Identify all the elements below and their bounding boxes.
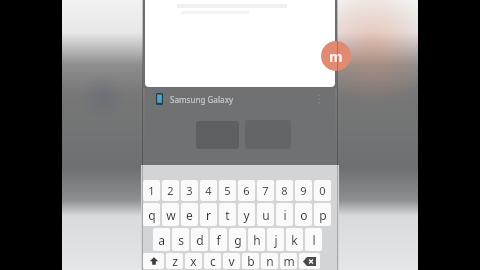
button[interactable]: Badge [321, 41, 351, 71]
staticText: 2 [167, 183, 174, 198]
button[interactable]: 5 [219, 180, 236, 201]
staticText: u [262, 207, 270, 223]
staticText: j [274, 232, 278, 248]
staticText: 6 [243, 183, 250, 198]
button[interactable]: s [172, 228, 189, 251]
staticText: z [172, 253, 178, 269]
button[interactable]: e [181, 203, 198, 226]
staticText: 5 [224, 183, 231, 198]
staticText: 0 [319, 183, 326, 198]
staticText: h [253, 232, 261, 248]
staticText: f [216, 232, 221, 248]
button[interactable]: h [248, 228, 265, 251]
button[interactable]: x [185, 253, 202, 269]
button[interactable]: 4 [200, 180, 217, 201]
staticText: c [210, 253, 216, 269]
button[interactable]: f [210, 228, 227, 251]
staticText: g [234, 232, 242, 248]
staticText: 3 [186, 183, 193, 198]
staticText: l [312, 232, 316, 248]
button[interactable]: v [223, 253, 240, 269]
button[interactable]: 1 [143, 180, 160, 201]
button[interactable]: j [267, 228, 284, 251]
button[interactable]: y [238, 203, 255, 226]
button[interactable]: c [204, 253, 221, 269]
button[interactable]: 0 [314, 180, 331, 201]
staticText: x [190, 253, 197, 269]
staticText: m [329, 47, 343, 66]
button[interactable]: t [219, 203, 236, 226]
staticText: i [283, 207, 287, 223]
staticText: b [247, 253, 255, 269]
staticText: 9 [300, 183, 307, 198]
button[interactable]: l [305, 228, 322, 251]
button[interactable]: 6 [238, 180, 255, 201]
staticText: y [243, 207, 250, 223]
staticText: 7 [262, 183, 269, 198]
staticText: d [196, 232, 204, 248]
staticText: m [283, 253, 295, 269]
staticText: o [300, 207, 308, 223]
button[interactable]: g [229, 228, 246, 251]
staticText: 8 [281, 183, 288, 198]
button[interactable]: 7 [257, 180, 274, 201]
button[interactable]: 3 [181, 180, 198, 201]
staticText: s [178, 232, 184, 248]
staticText: e [186, 207, 193, 223]
button[interactable]: u [257, 203, 274, 226]
button[interactable]: b [242, 253, 259, 269]
staticText: v [228, 253, 235, 269]
button[interactable]: p [314, 203, 331, 226]
button[interactable]: q [143, 203, 160, 226]
button[interactable]: a [153, 228, 170, 251]
staticText: q [148, 207, 156, 223]
button[interactable]: k [286, 228, 303, 251]
staticText: t [225, 207, 230, 223]
button[interactable]: Shift [143, 253, 164, 269]
button[interactable]: w [162, 203, 179, 226]
button[interactable]: 8 [276, 180, 293, 201]
staticText: r [206, 207, 211, 223]
button[interactable]: o [295, 203, 312, 226]
button[interactable]: z [166, 253, 183, 269]
button[interactable]: d [191, 228, 208, 251]
button[interactable]: r [200, 203, 217, 226]
button[interactable]: Backspace [299, 253, 320, 269]
button[interactable]: i [276, 203, 293, 226]
staticText: k [291, 232, 298, 248]
button[interactable]: Samsung Galaxy [145, 88, 335, 110]
staticText: p [319, 207, 327, 223]
button[interactable]: n [261, 253, 278, 269]
button[interactable]: 2 [162, 180, 179, 201]
staticText: 1 [148, 183, 155, 198]
button[interactable]: 9 [295, 180, 312, 201]
button[interactable]: m [280, 253, 297, 269]
staticText: n [266, 253, 274, 269]
staticText: a [158, 232, 165, 248]
staticText: 4 [205, 183, 212, 198]
staticText: w [166, 207, 176, 223]
staticText: Samsung Galaxy [170, 94, 234, 105]
